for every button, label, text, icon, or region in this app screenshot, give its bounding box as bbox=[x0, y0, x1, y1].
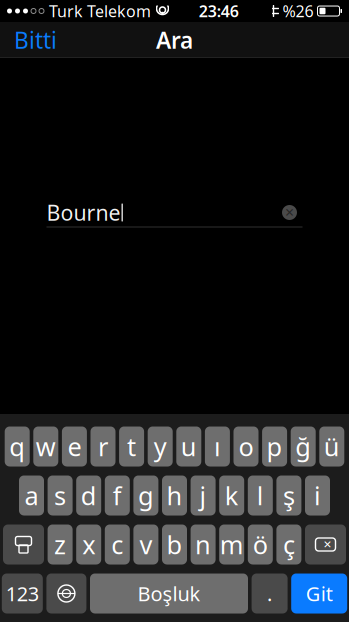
button[interactable]: Shift bbox=[3, 524, 44, 564]
button[interactable]: v bbox=[133, 524, 158, 564]
button[interactable]: b bbox=[162, 524, 187, 564]
staticText: i bbox=[314, 479, 321, 512]
button[interactable]: z bbox=[48, 524, 73, 564]
button[interactable]: ş bbox=[276, 475, 301, 515]
button[interactable]: h bbox=[162, 475, 187, 515]
staticText: q bbox=[9, 430, 25, 463]
staticText: Git bbox=[306, 580, 333, 607]
staticText: x bbox=[82, 528, 95, 561]
button[interactable]: o bbox=[233, 426, 258, 466]
button[interactable]: k bbox=[219, 475, 244, 515]
staticText: s bbox=[54, 479, 66, 512]
staticText: n bbox=[195, 528, 211, 561]
staticText: w bbox=[36, 430, 56, 463]
button[interactable]: . bbox=[252, 573, 288, 613]
button[interactable]: y bbox=[148, 426, 173, 466]
button[interactable]: p bbox=[262, 426, 287, 466]
button[interactable]: Bitti bbox=[0, 17, 71, 63]
staticText: k bbox=[225, 479, 239, 512]
button[interactable]: g bbox=[133, 475, 158, 515]
button[interactable]: ç bbox=[276, 524, 301, 564]
button[interactable]: Sonraki klavye bbox=[46, 573, 86, 613]
staticText: . bbox=[267, 580, 272, 607]
button[interactable]: ı bbox=[205, 426, 230, 466]
staticText: ü bbox=[324, 430, 340, 463]
staticText: a bbox=[24, 479, 38, 512]
button[interactable]: u bbox=[176, 426, 201, 466]
button[interactable]: x bbox=[76, 524, 101, 564]
button[interactable]: ö bbox=[248, 524, 273, 564]
staticText: f bbox=[113, 479, 122, 512]
staticText: e bbox=[67, 430, 81, 463]
staticText: ç bbox=[283, 528, 295, 561]
staticText: d bbox=[81, 479, 97, 512]
staticText: Bitti bbox=[14, 25, 57, 55]
staticText: Turk Telekom bbox=[49, 0, 151, 22]
button[interactable]: Sil bbox=[305, 524, 346, 564]
button[interactable]: m bbox=[219, 524, 244, 564]
button[interactable]: e bbox=[62, 426, 87, 466]
button[interactable]: l bbox=[248, 475, 273, 515]
button[interactable]: ğ bbox=[291, 426, 316, 466]
staticText: o bbox=[238, 430, 253, 463]
staticText: r bbox=[98, 430, 108, 463]
staticText: c bbox=[111, 528, 123, 561]
staticText: g bbox=[138, 479, 154, 512]
staticText: Boşluk bbox=[137, 580, 200, 607]
staticText: ğ bbox=[295, 430, 311, 463]
button[interactable]: r bbox=[90, 426, 115, 466]
staticText: z bbox=[54, 528, 66, 561]
staticText: b bbox=[166, 528, 182, 561]
staticText: 123 bbox=[6, 580, 39, 607]
staticText: 23:46 bbox=[199, 0, 239, 22]
staticText: Ara bbox=[156, 25, 193, 55]
staticText: y bbox=[154, 430, 167, 463]
button[interactable]: a bbox=[19, 475, 44, 515]
button[interactable]: w bbox=[33, 426, 58, 466]
staticText: u bbox=[181, 430, 197, 463]
button[interactable]: n bbox=[191, 524, 216, 564]
staticText: l bbox=[257, 479, 264, 512]
staticText: ✕ bbox=[323, 538, 332, 550]
button[interactable]: d bbox=[76, 475, 101, 515]
staticText: ö bbox=[253, 528, 268, 561]
staticText: h bbox=[166, 479, 182, 512]
staticText: m bbox=[220, 528, 244, 561]
staticText: ş bbox=[283, 479, 295, 512]
button[interactable]: 123 bbox=[2, 573, 43, 613]
staticText: p bbox=[267, 430, 283, 463]
button[interactable]: f bbox=[105, 475, 130, 515]
button[interactable]: Boşluk bbox=[90, 573, 248, 613]
staticText: v bbox=[139, 528, 152, 561]
button[interactable]: c bbox=[105, 524, 130, 564]
button[interactable]: i bbox=[305, 475, 330, 515]
button[interactable]: j bbox=[191, 475, 216, 515]
button[interactable]: Metni sil bbox=[276, 199, 302, 225]
button[interactable]: s bbox=[48, 475, 73, 515]
staticText: j bbox=[200, 479, 207, 512]
button[interactable]: Git bbox=[291, 573, 347, 613]
staticText: ı bbox=[214, 430, 221, 463]
staticText: t bbox=[127, 430, 136, 463]
button[interactable]: ü bbox=[319, 426, 344, 466]
staticText: %26 bbox=[282, 0, 313, 22]
button[interactable]: q bbox=[5, 426, 30, 466]
button[interactable]: t bbox=[119, 426, 144, 466]
staticText: Bourne bbox=[46, 198, 120, 227]
staticText: ✕ bbox=[284, 206, 294, 219]
